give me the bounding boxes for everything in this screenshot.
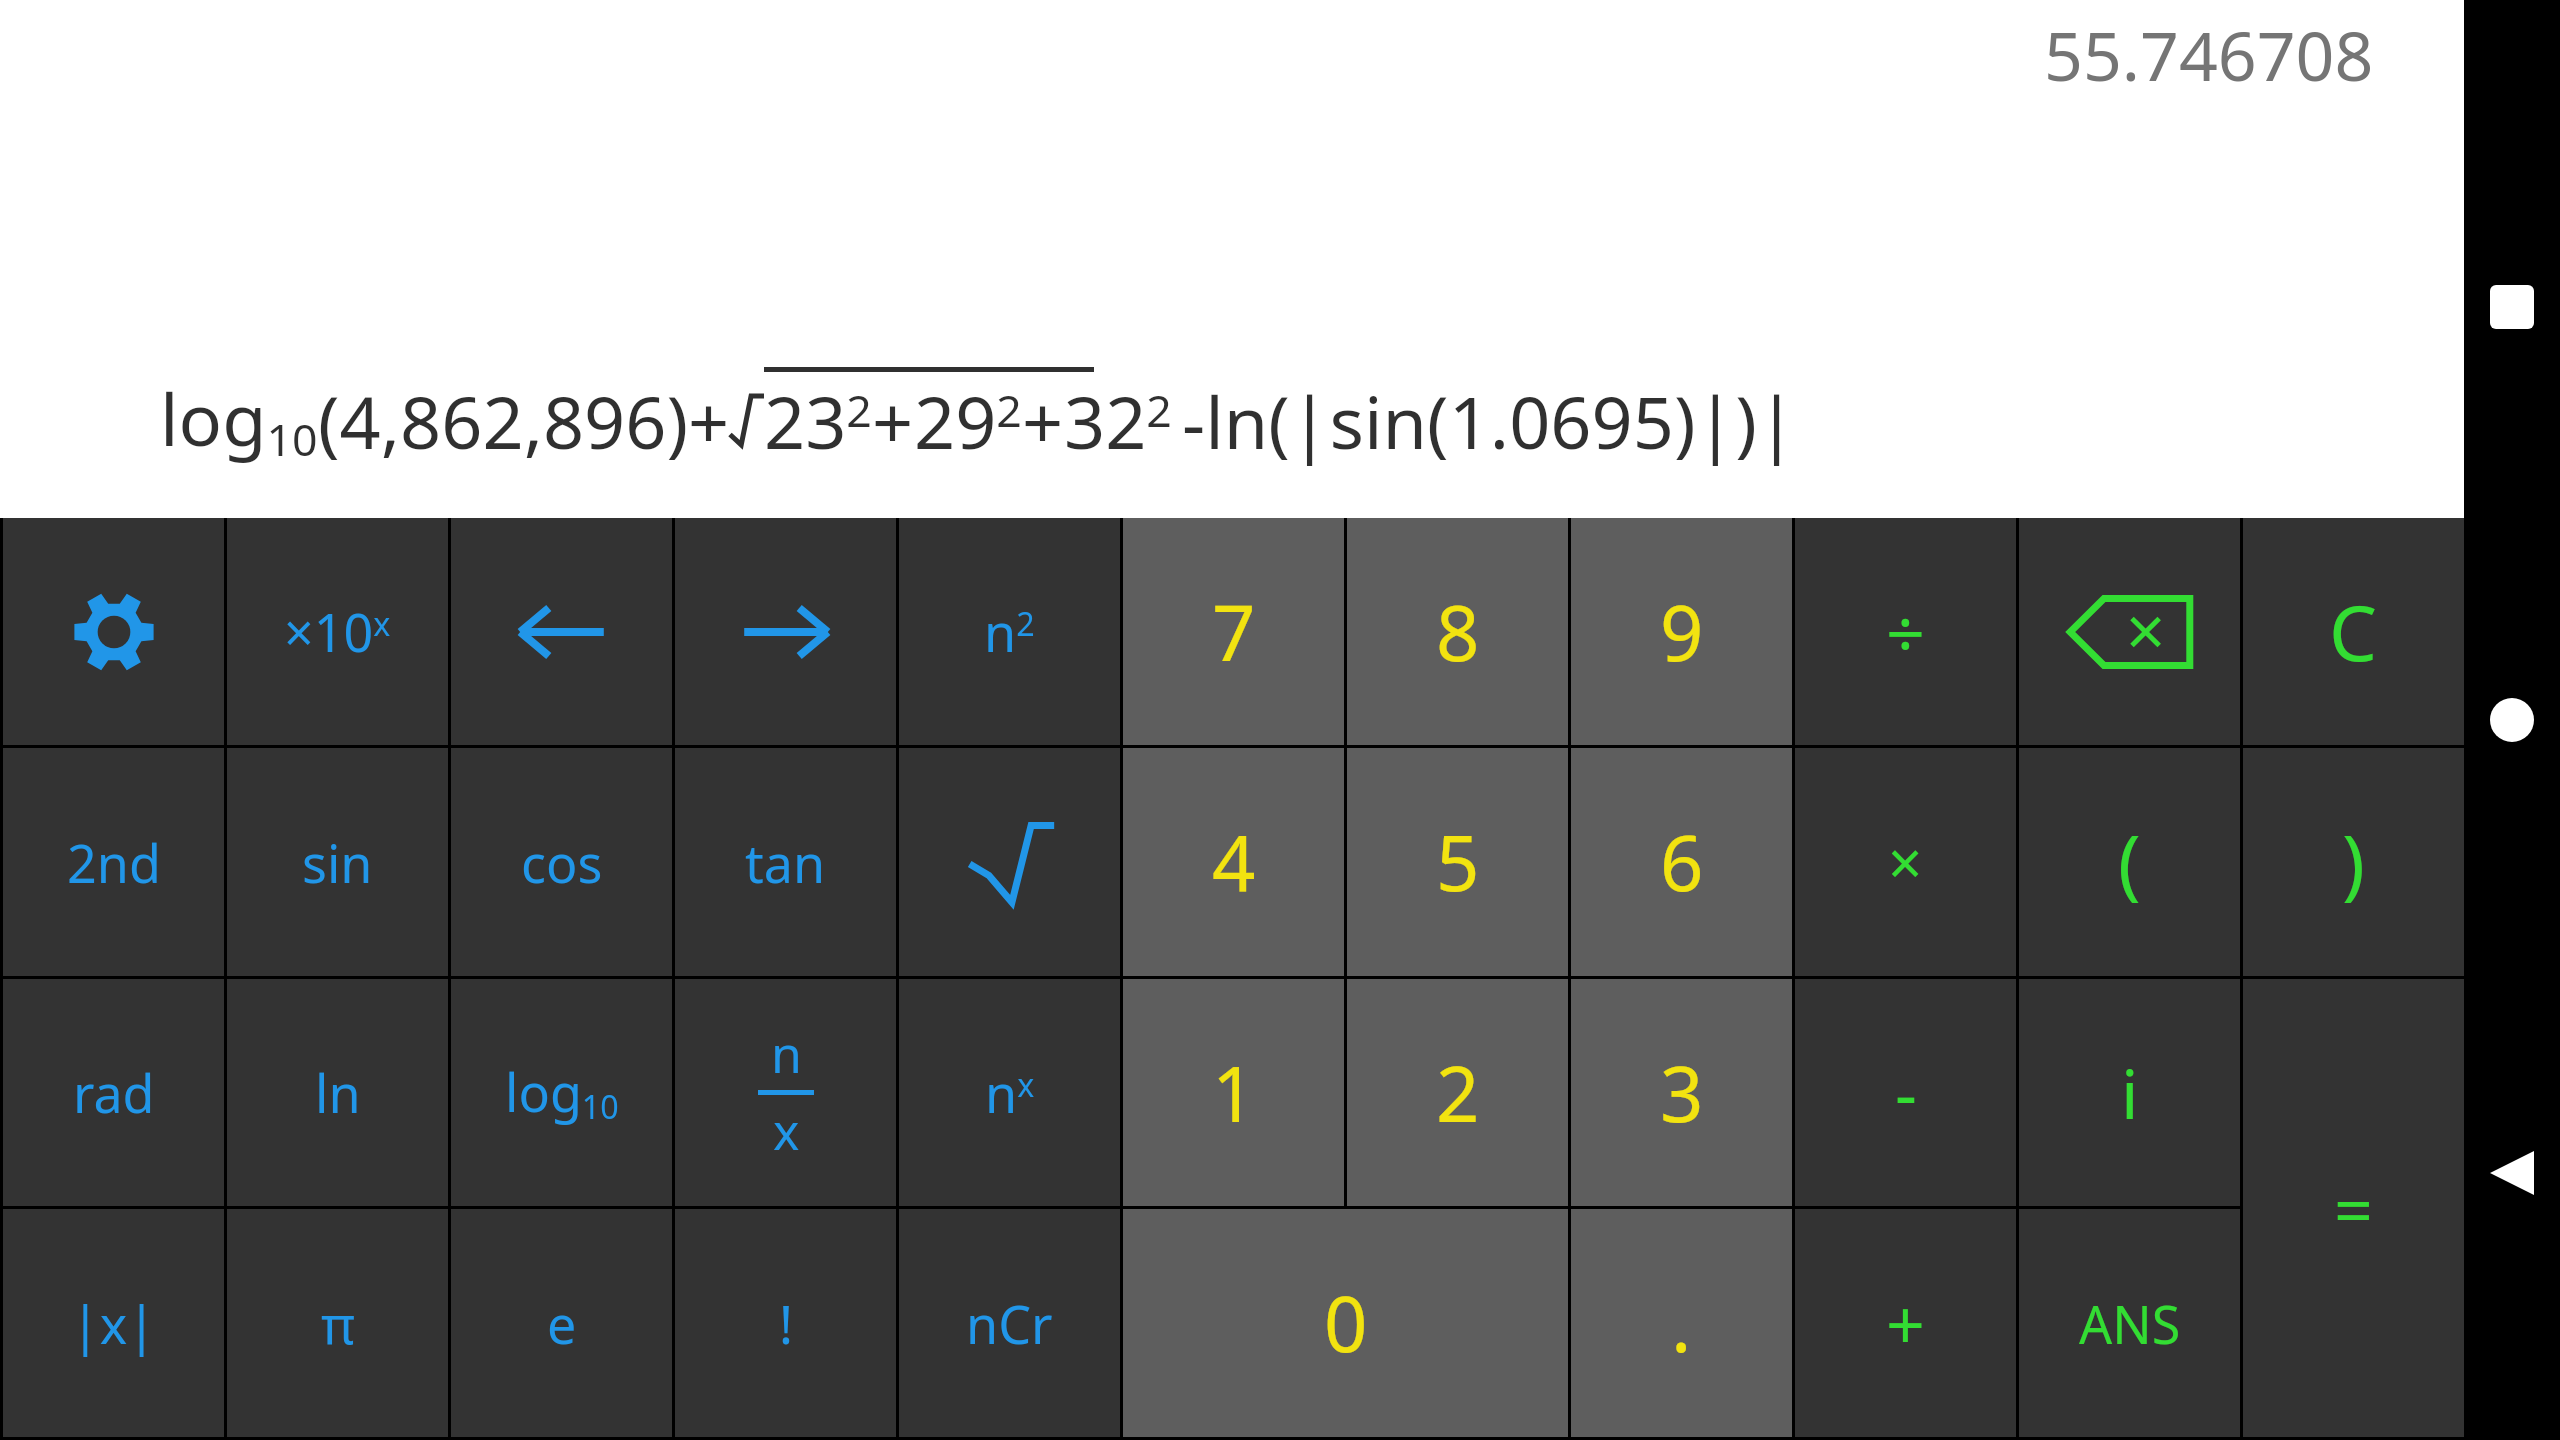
staticText: 292 [914,372,1022,470]
staticText: log10 [160,369,318,470]
staticText: cos [521,827,603,898]
staticText: ANS [2079,1288,2181,1359]
staticText: + [872,372,914,470]
staticText: ) [2342,810,2365,914]
staticText: (4,862,896)+ [318,372,730,470]
button[interactable]: Back [2475,1136,2549,1210]
staticText: × [1888,821,1923,903]
button[interactable]: + [1795,1209,2016,1437]
staticText: i [2121,1046,2139,1139]
button[interactable]: Home [2475,683,2549,757]
staticText: + [1022,372,1064,470]
staticText: x [773,1097,800,1165]
button[interactable]: Square root [899,748,1120,976]
button[interactable]: rad [3,979,224,1206]
staticText: 0 [1324,1271,1368,1375]
button[interactable]: - [1795,979,2016,1206]
staticText: ! [779,1288,793,1359]
staticText: 5 [1436,810,1480,914]
staticText: 8 [1436,580,1480,684]
button[interactable]: = [2243,979,2464,1437]
button[interactable]: Backspace [2019,518,2240,745]
staticText: 2 [1436,1041,1480,1145]
staticText: 7 [1212,580,1256,684]
staticText: 232 [764,372,872,470]
staticText: nCr [966,1288,1053,1359]
button[interactable]: Move right [675,518,896,745]
staticText: n2 [984,596,1035,667]
staticText: e [547,1288,577,1359]
button[interactable]: ) [2243,748,2464,976]
staticText: n [771,1020,802,1088]
staticText: tan [745,827,826,898]
staticText: 55.746708 [2044,8,2374,101]
button[interactable]: Settings [3,518,224,745]
button[interactable]: ×10x [227,518,448,745]
button[interactable]: 5 [1347,748,1568,976]
button[interactable]: ( [2019,748,2240,976]
button[interactable]: 7 [1123,518,1344,745]
staticText: 1 [1212,1041,1256,1145]
button[interactable]: ANS [2019,1209,2240,1437]
button[interactable]: . [1571,1209,1792,1437]
button[interactable]: Recents [2475,270,2549,344]
staticText: 6 [1660,810,1704,914]
button[interactable]: 1 [1123,979,1344,1206]
button[interactable]: 9 [1571,518,1792,745]
staticText: 2nd [67,827,161,898]
staticText: 3 [1660,1041,1704,1145]
staticText: 322 [1064,372,1172,470]
button[interactable]: Move left [451,518,672,745]
staticText: -ln(|sin(1.0695)|)| [1182,372,1797,470]
staticText: π [321,1288,355,1359]
button[interactable]: ! [675,1209,896,1437]
button[interactable]: ln [227,979,448,1206]
staticText: . [1671,1271,1692,1375]
button[interactable]: |x| [3,1209,224,1437]
staticText: 4 [1212,810,1256,914]
button[interactable]: π [227,1209,448,1437]
staticText: + [1886,1277,1925,1370]
staticText: rad [73,1057,155,1128]
button[interactable]: log10 [451,979,672,1206]
staticText: log10 [505,1056,619,1129]
button[interactable]: 0 [1123,1209,1568,1437]
button[interactable]: 3 [1571,979,1792,1206]
button[interactable]: 8 [1347,518,1568,745]
staticText: ( [2118,810,2141,914]
button[interactable]: e [451,1209,672,1437]
button[interactable]: nCr [899,1209,1120,1437]
button[interactable]: i [2019,979,2240,1206]
button[interactable]: cos [451,748,672,976]
button[interactable]: 2nd [3,748,224,976]
staticText: ln [315,1057,361,1128]
staticText: 9 [1660,580,1704,684]
staticText: sin [302,827,373,898]
staticText: = [2334,1162,2373,1255]
button[interactable]: 4 [1123,748,1344,976]
staticText: ÷ [1886,585,1925,678]
button[interactable]: × [1795,748,2016,976]
button[interactable]: sin [227,748,448,976]
button[interactable]: ÷ [1795,518,2016,745]
staticText: - [1895,1046,1917,1139]
staticText: |x| [71,1288,156,1359]
staticText: nx [985,1057,1035,1128]
staticText: ×10x [284,596,391,667]
button[interactable]: 2 [1347,979,1568,1206]
button[interactable]: n [675,979,896,1206]
staticText: C [2329,580,2378,684]
button[interactable]: C [2243,518,2464,745]
button[interactable]: tan [675,748,896,976]
button[interactable]: nx [899,979,1120,1206]
button[interactable]: n2 [899,518,1120,745]
button[interactable]: 6 [1571,748,1792,976]
